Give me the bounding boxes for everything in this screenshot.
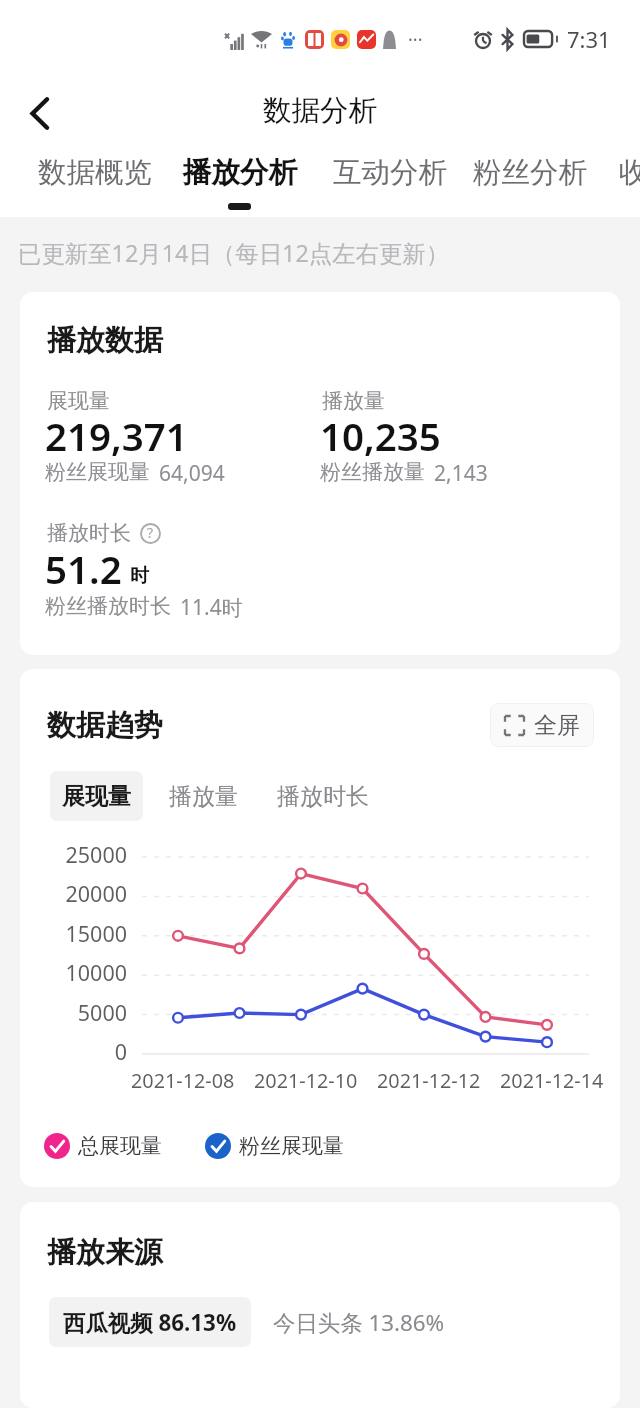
staticText: 播放时长 [277,782,369,811]
staticText: 播放数据 [47,322,163,359]
staticText: 粉丝播放量 [320,459,425,485]
staticText: 2,143 [434,459,488,488]
button[interactable]: 数据概览 [38,147,152,199]
staticText: 10,235 [320,410,441,462]
button[interactable]: 今日头条 13.86% [259,1297,459,1347]
staticText: 64,094 [159,459,225,488]
button[interactable]: 播放分析 [183,147,297,199]
staticText: 10000 [20,958,127,987]
staticText: 播放时长 [47,520,131,546]
staticText: 2021-12-08 [131,1067,235,1094]
staticText: 2021-12-14 [500,1067,604,1094]
staticText: ? [147,523,154,542]
button[interactable]: Back [12,85,68,141]
staticText: 粉丝展现量 [239,1133,344,1159]
staticText: 粉丝播放时长 [45,593,171,619]
button[interactable]: 播放量 [157,771,250,821]
button[interactable]: 粉丝分析 [473,147,587,199]
staticText: 粉丝分析 [473,155,587,191]
staticText: 2021-12-12 [377,1067,481,1094]
staticText: 数据概览 [38,155,152,191]
staticText: 7:31 [567,24,611,54]
staticText: 20000 [20,879,127,908]
staticText: 播放分析 [183,155,297,191]
staticText: 播放来源 [47,1234,163,1271]
staticText: 5000 [20,998,127,1027]
staticText: 展现量 [62,782,131,811]
staticText: 收 [619,155,640,191]
staticText: 播放量 [169,782,238,811]
staticText: 今日头条 13.86% [273,1307,445,1338]
staticText: 全屏 [534,711,580,740]
button[interactable]: 全屏 [490,703,594,747]
button[interactable]: 收 [619,147,640,199]
button[interactable]: 西瓜视频 86.13% [49,1297,251,1347]
staticText: 数据趋势 [47,707,163,744]
button[interactable]: 展现量 [50,771,143,821]
staticText: 25000 [20,840,127,869]
button[interactable]: 播放时长 [265,771,381,821]
staticText: 播放量 [322,388,385,414]
staticText: 互动分析 [333,155,447,191]
button[interactable]: 互动分析 [333,147,447,199]
staticText: 0 [20,1037,127,1066]
staticText: 西瓜视频 86.13% [63,1307,237,1338]
button[interactable]: Help [140,523,161,544]
staticText: 2021-12-10 [254,1067,358,1094]
staticText: 粉丝展现量 [45,459,150,485]
staticText: 51.2 [45,543,122,595]
staticText: 已更新至12月14日（每日12点左右更新） [18,237,450,269]
staticText: 展现量 [47,388,110,414]
staticText: 总展现量 [78,1133,162,1159]
staticText: 219,371 [45,410,188,462]
staticText: ··· [408,27,423,52]
staticText: 时 [130,564,149,588]
staticText: 数据分析 [263,93,377,129]
staticText: 15000 [20,919,127,948]
staticText: 11.4时 [180,593,243,622]
